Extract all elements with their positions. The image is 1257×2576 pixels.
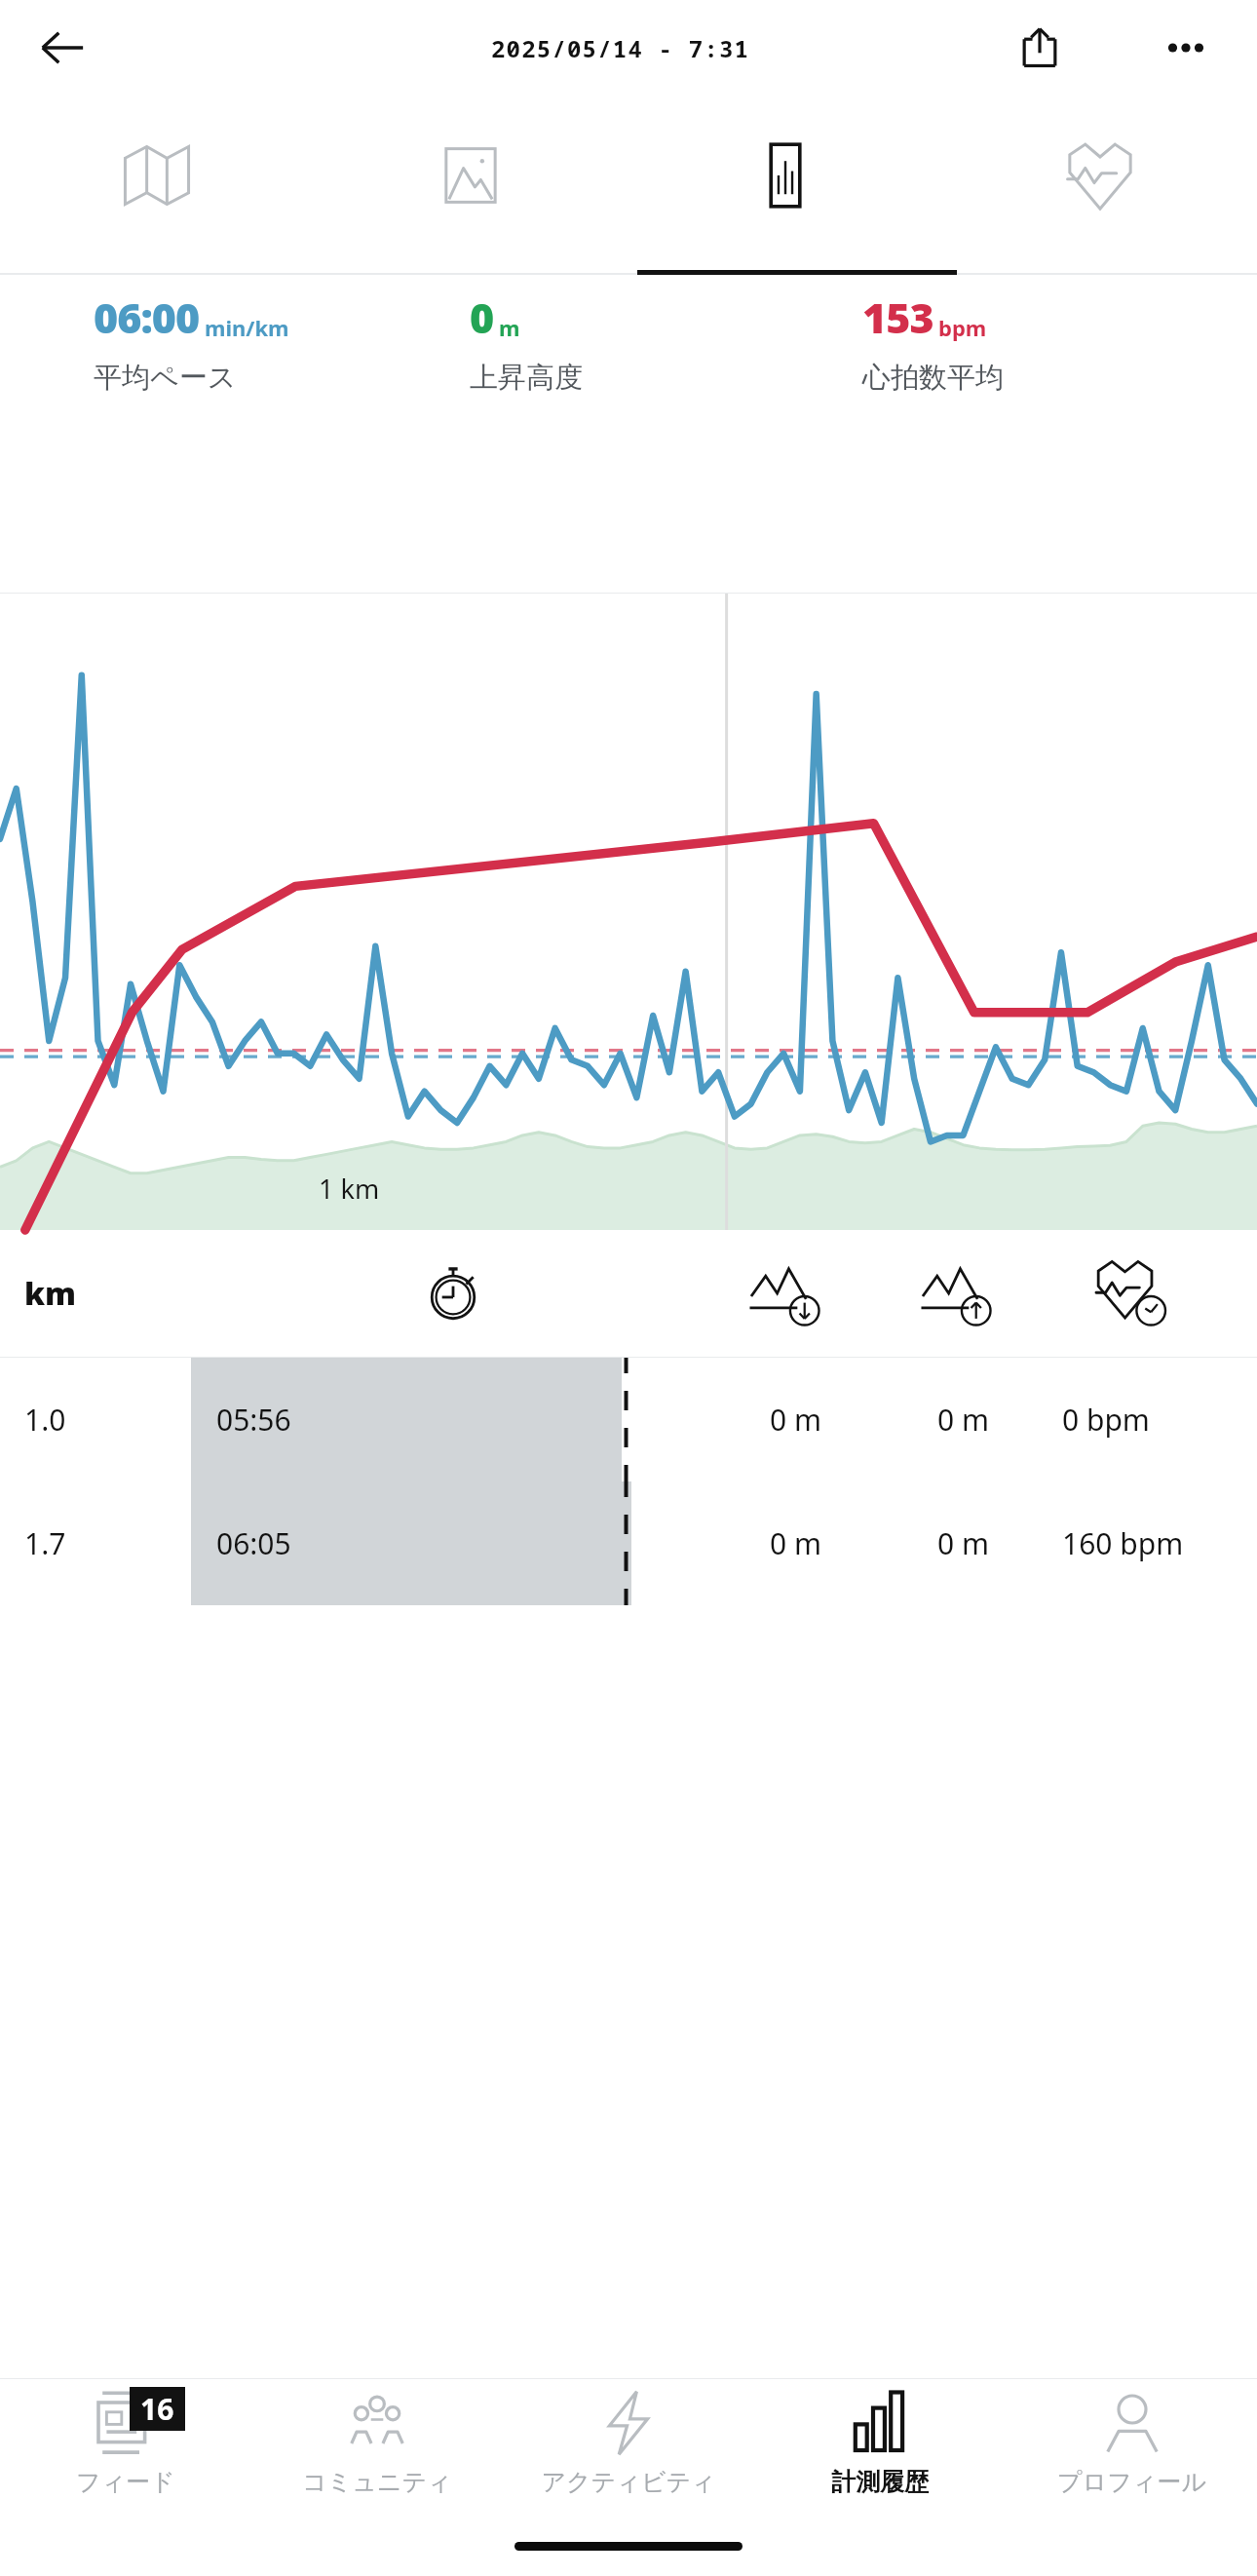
button[interactable]: Heart rate (942, 95, 1257, 272)
staticText: 16 (140, 2389, 174, 2429)
button[interactable]: More options (1150, 12, 1222, 84)
button[interactable]: Photos (314, 95, 628, 272)
staticText: 0 m (770, 1400, 822, 1440)
button[interactable]: Back (27, 13, 97, 83)
staticText: 05:56 (216, 1400, 291, 1440)
staticText: 0 (470, 288, 494, 346)
staticText: 06:05 (216, 1523, 291, 1563)
staticText: コミュニティ (302, 2467, 452, 2497)
button[interactable]: Charts (628, 95, 942, 272)
staticText: 0 m (770, 1523, 822, 1563)
staticText: 160 bpm (1062, 1523, 1184, 1563)
staticText: 1 km (319, 1171, 380, 1207)
staticText: 1.0 (24, 1400, 66, 1440)
staticText: フィード (76, 2467, 175, 2497)
staticText: 上昇高度 (470, 360, 583, 396)
staticText: アクティビティ (541, 2467, 716, 2497)
button[interactable]: 1.0 (0, 1358, 1257, 1481)
staticText: bpm (938, 313, 987, 342)
staticText: 0 m (937, 1523, 990, 1563)
staticText: km (24, 1272, 77, 1315)
staticText: 計測履歴 (831, 2467, 929, 2497)
other: Elevation gain (748, 1257, 820, 1329)
staticText: 1.7 (24, 1523, 66, 1563)
button[interactable]: コミュニティ (251, 2379, 503, 2516)
button[interactable]: 1.7 (0, 1481, 1257, 1605)
button[interactable]: Share (1004, 12, 1076, 84)
staticText: min/km (205, 313, 289, 342)
staticText: 0 bpm (1062, 1400, 1150, 1440)
button[interactable]: アクティビティ (503, 2379, 754, 2516)
button[interactable]: Map (0, 95, 314, 272)
staticText: m (499, 313, 520, 342)
button[interactable]: 16 (0, 2379, 251, 2516)
other: Time (421, 1261, 485, 1326)
staticText: 153 (862, 288, 933, 346)
button[interactable]: 計測履歴 (754, 2379, 1006, 2516)
staticText: 06:00 (94, 288, 200, 346)
other: Elevation loss (920, 1257, 992, 1329)
staticText: 平均ペース (94, 360, 237, 396)
button[interactable]: プロフィール (1006, 2379, 1257, 2516)
other: Average heart rate (1093, 1257, 1165, 1329)
staticText: プロフィール (1057, 2467, 1206, 2497)
staticText: 0 m (937, 1400, 990, 1440)
staticText: 心拍数平均 (862, 360, 1004, 396)
staticText: 2025/05/14 - 7:31 (491, 32, 750, 64)
